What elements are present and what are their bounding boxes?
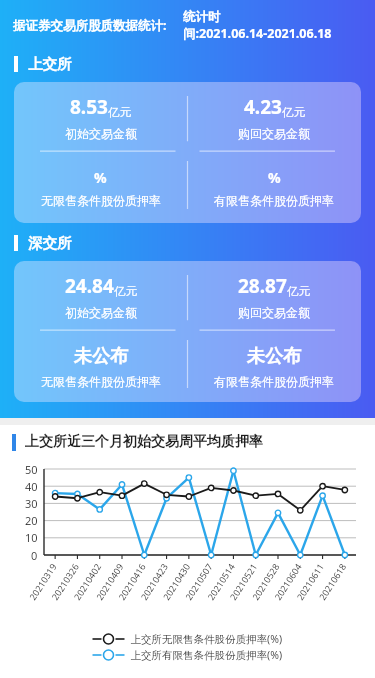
button[interactable]: 上交所 xyxy=(0,55,375,73)
button[interactable]: 深交所 xyxy=(0,234,375,252)
button[interactable]: 未公布 xyxy=(14,331,187,402)
button[interactable]: 28.87 xyxy=(187,261,361,331)
staticText: 上交所 xyxy=(28,55,72,73)
staticText: 有限售条件股份质押率 xyxy=(214,374,334,389)
other: Weekly average pledge rate chart xyxy=(0,463,375,678)
button[interactable]: 8.53 xyxy=(14,82,361,223)
staticText: 24.84 xyxy=(65,273,114,299)
staticText: 28.87 xyxy=(238,273,287,299)
staticText: 未公布 xyxy=(74,345,128,368)
button[interactable]: 未公布 xyxy=(187,331,361,402)
staticText: 亿元 xyxy=(282,105,305,119)
staticText: 8.53 xyxy=(70,94,108,120)
staticText: 上交所近三个月初始交易周平均质押率 xyxy=(25,433,263,451)
staticText: 4.23 xyxy=(244,94,282,120)
staticText: 初始交易金额 xyxy=(65,305,137,320)
staticText: 亿元 xyxy=(114,284,137,298)
staticText: 有限售条件股份质押率 xyxy=(214,193,334,208)
staticText: 购回交易金额 xyxy=(238,126,310,141)
staticText: 未公布 xyxy=(247,345,301,368)
button[interactable]: % xyxy=(14,152,187,223)
staticText: % xyxy=(94,168,107,187)
staticText: 购回交易金额 xyxy=(238,305,310,320)
button[interactable]: % xyxy=(187,152,361,223)
staticText: % xyxy=(268,168,281,187)
staticText: 无限售条件股份质押率 xyxy=(41,193,161,208)
button[interactable]: 24.84 xyxy=(14,261,187,331)
button[interactable]: 8.53 xyxy=(14,82,187,152)
button[interactable]: 4.23 xyxy=(187,82,361,152)
staticText: 统计时间:2021.06.14-2021.06.18 xyxy=(183,9,367,42)
button[interactable]: 24.84 xyxy=(14,261,361,402)
staticText: 深交所 xyxy=(28,234,72,252)
button[interactable]: 上交所近三个月初始交易周平均质押率 xyxy=(0,433,375,451)
staticText: 初始交易金额 xyxy=(65,126,137,141)
staticText: 亿元 xyxy=(287,284,310,298)
staticText: 亿元 xyxy=(108,105,131,119)
staticText: 据证券交易所股质数据统计: xyxy=(13,17,167,34)
staticText: 无限售条件股份质押率 xyxy=(41,374,161,389)
